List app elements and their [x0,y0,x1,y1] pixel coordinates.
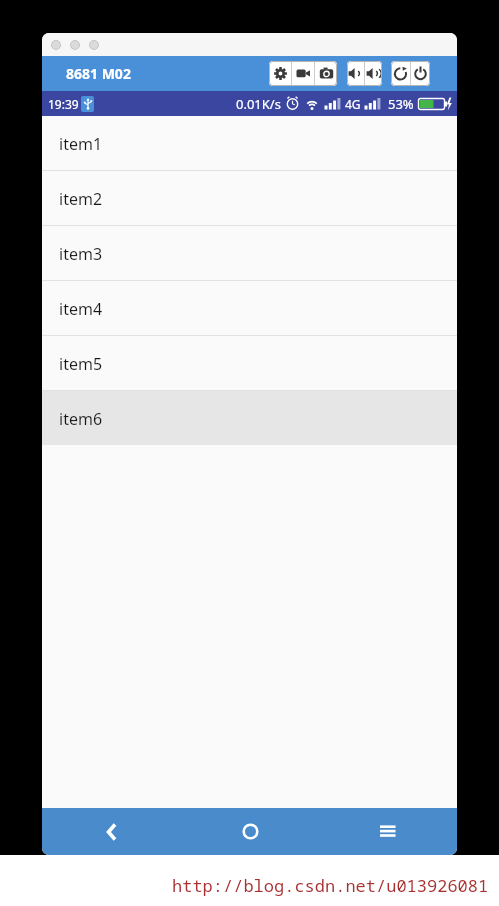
button[interactable]: item4 [42,281,457,335]
staticText: 19:39 [48,96,79,112]
button[interactable] [391,61,410,86]
button[interactable] [365,61,382,86]
button[interactable] [42,808,181,855]
staticText: 0.01K/s [236,95,281,113]
button[interactable] [292,61,314,86]
staticText: 8681 M02 [66,64,131,83]
staticText: 53% [388,95,414,113]
button[interactable] [319,808,457,855]
button[interactable]: item3 [42,226,457,280]
staticText: item5 [59,353,103,375]
button[interactable]: item6 [42,391,457,445]
button[interactable] [411,61,430,86]
button[interactable] [181,808,319,855]
button[interactable] [315,61,337,86]
staticText: http://blog.csdn.net/u013926081 [172,874,489,897]
button[interactable] [347,61,364,86]
button[interactable]: item5 [42,336,457,390]
button[interactable]: item2 [42,171,457,225]
staticText: item2 [59,188,103,210]
button[interactable]: item1 [42,116,457,170]
staticText: item4 [59,298,103,320]
staticText: item1 [59,133,103,155]
staticText: 4G [345,96,361,112]
staticText: item3 [59,243,103,265]
button[interactable] [269,61,291,86]
staticText: item6 [59,408,103,430]
